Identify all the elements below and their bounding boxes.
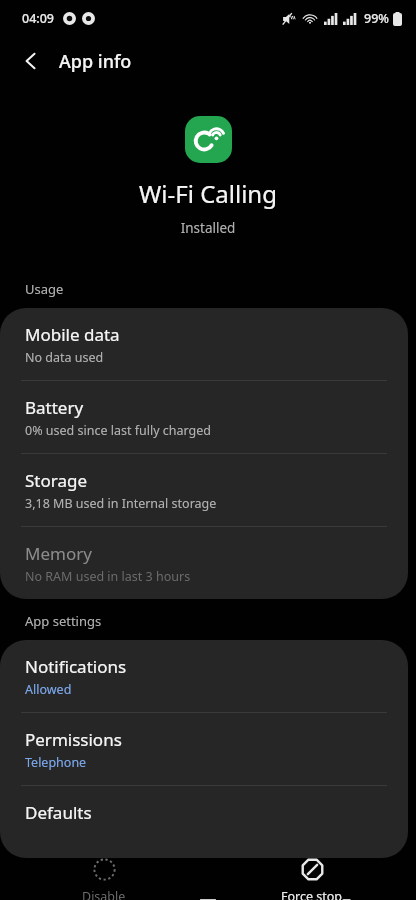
staticText: 0% used since last fully charged [25, 422, 212, 439]
staticText: No RAM used in last 3 hours [25, 568, 191, 585]
staticText: Disable [82, 888, 126, 900]
button[interactable]: Memory [0, 527, 408, 599]
staticText: Mobile data [25, 323, 120, 346]
staticText: Telephone [25, 754, 87, 771]
staticText: App settings [25, 612, 102, 630]
staticText: Usage [25, 280, 64, 298]
staticText: Installed [0, 219, 416, 237]
staticText: 3,18 MB used in Internal storage [25, 495, 217, 512]
button[interactable]: Force stop [208, 858, 416, 900]
button[interactable]: Permissions [0, 713, 408, 786]
staticText: Allowed [25, 681, 72, 698]
button[interactable]: Back [0, 36, 416, 86]
button[interactable]: Disable [0, 858, 208, 900]
button[interactable]: Defaults [0, 786, 408, 858]
button[interactable]: Battery [0, 381, 408, 454]
staticText: Notifications [25, 655, 127, 678]
staticText: Wi-Fi Calling [0, 177, 416, 210]
button[interactable]: Mobile data [0, 308, 408, 381]
button[interactable]: Storage [0, 454, 408, 527]
staticText: No data used [25, 349, 104, 366]
button[interactable]: Notifications [0, 640, 408, 713]
staticText: App info [59, 49, 132, 74]
staticText: Memory [25, 542, 92, 565]
staticText: Permissions [25, 728, 122, 751]
staticText: Storage [25, 469, 88, 492]
staticText: Battery [25, 396, 84, 419]
staticText: Defaults [25, 801, 92, 824]
staticText: 99% [364, 10, 389, 27]
staticText: Force stop [281, 888, 343, 900]
staticText: 04:09 [22, 10, 55, 27]
